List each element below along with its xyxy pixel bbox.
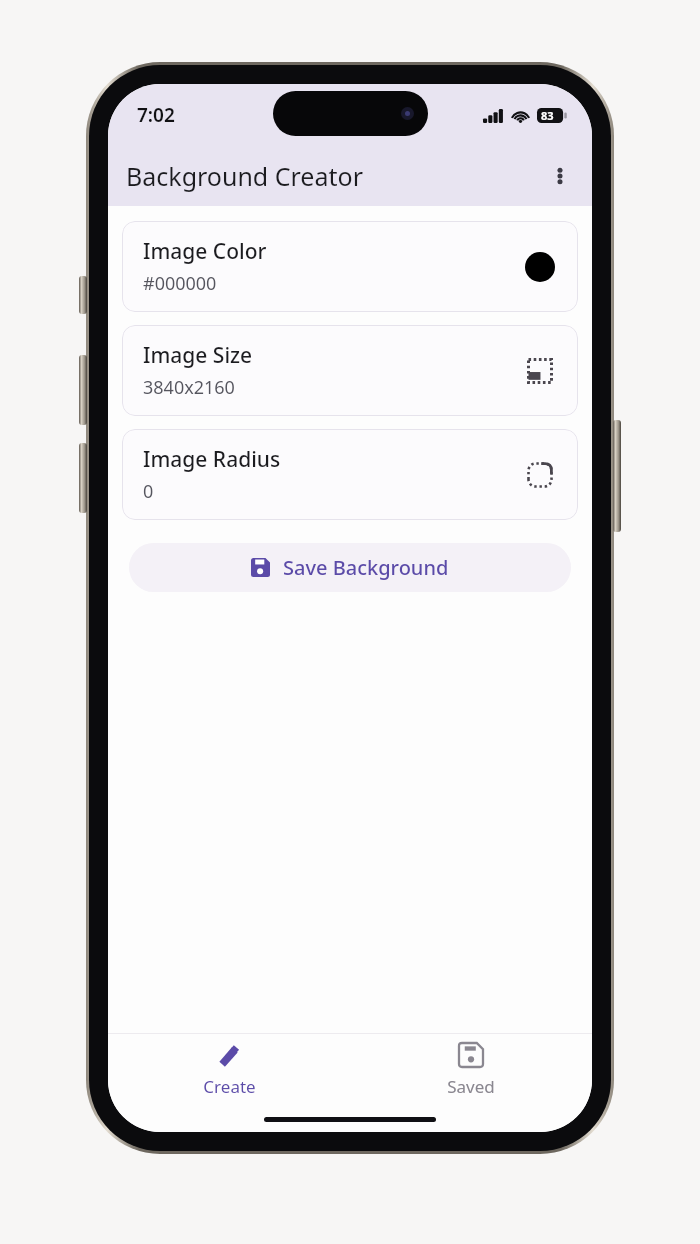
- staticText: Image Color: [143, 237, 267, 266]
- button[interactable]: Saved: [350, 1034, 592, 1106]
- staticText: #000000: [143, 271, 217, 296]
- staticText: Saved: [447, 1075, 495, 1098]
- button[interactable]: Image Radius: [122, 429, 578, 520]
- staticText: 83: [541, 108, 554, 123]
- staticText: Image Radius: [143, 445, 281, 474]
- staticText: Create: [203, 1075, 256, 1098]
- staticText: 7:02: [137, 102, 175, 128]
- staticText: Background Creator: [126, 159, 363, 193]
- staticText: Save Background: [283, 554, 449, 581]
- button[interactable]: Create: [108, 1034, 350, 1106]
- button[interactable]: Save Background: [129, 543, 571, 592]
- staticText: Image Size: [143, 341, 253, 370]
- button[interactable]: More options: [536, 152, 584, 200]
- button[interactable]: Image Size: [122, 325, 578, 416]
- button[interactable]: Image Color: [122, 221, 578, 312]
- staticText: 0: [143, 479, 154, 504]
- staticText: 3840x2160: [143, 375, 235, 400]
